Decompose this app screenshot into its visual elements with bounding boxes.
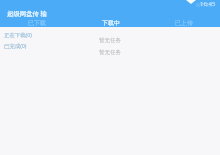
button[interactable]: 正在下载(0) [4, 31, 32, 38]
staticText: 已下载 [28, 19, 46, 27]
staticText: 暂无任务 [99, 37, 121, 44]
staticText: 已完成(0) [4, 42, 27, 49]
staticText: 正在下载(0) [4, 31, 32, 38]
button[interactable]: 下载中 [74, 18, 147, 27]
button[interactable]: 已上传 [147, 18, 220, 27]
staticText: 16:45 [200, 0, 216, 8]
button[interactable]: 已下载 [0, 18, 74, 27]
other: Wi-Fi signal [186, 0, 196, 4]
button[interactable]: 已完成(0) [4, 42, 27, 49]
staticText: 9月12日 [196, 2, 213, 8]
staticText: 暂无任务 [99, 49, 121, 56]
staticText: 下载中 [102, 19, 120, 27]
staticText: 已上传 [175, 19, 193, 27]
staticText: 超级网盘传 输 [7, 9, 48, 18]
